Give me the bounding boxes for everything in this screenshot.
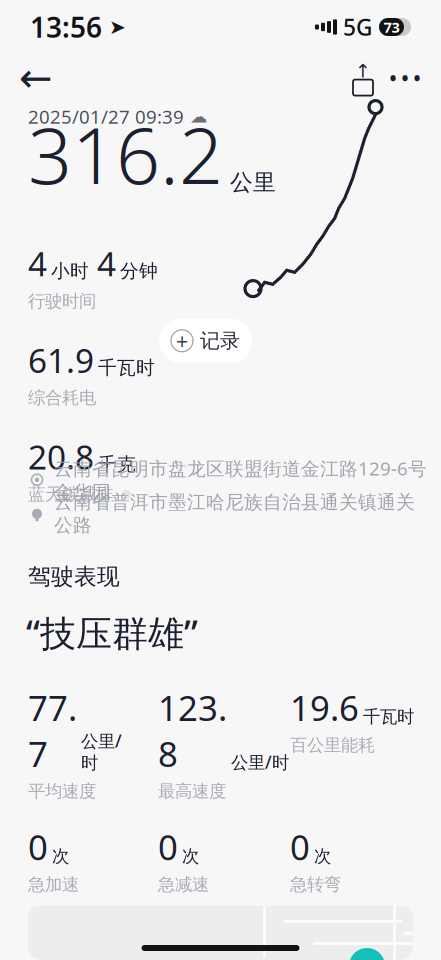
staticText: 次 — [52, 845, 69, 867]
button[interactable]: More — [383, 56, 427, 100]
staticText: 次 — [314, 845, 331, 867]
staticText: 4 — [97, 241, 116, 286]
staticText: 5G — [343, 12, 372, 42]
staticText: “技压群雄” — [26, 609, 198, 656]
staticText: 千瓦时 — [98, 356, 155, 379]
staticText: 记录 — [200, 328, 240, 353]
staticText: 云南省普洱市墨江哈尼族自治县通关镇通关公路 — [54, 491, 415, 537]
staticText: 千瓦时 — [363, 706, 414, 727]
staticText: 急减速 — [158, 874, 209, 895]
button[interactable]: Share — [343, 58, 383, 98]
staticText: 0 — [158, 824, 178, 870]
button[interactable]: + — [159, 319, 252, 363]
staticText: 19.6 — [290, 684, 359, 730]
staticText: 公里/时 — [81, 729, 122, 773]
staticText: 公里 — [230, 168, 276, 196]
staticText: 次 — [182, 845, 199, 867]
staticText: 驾驶表现 — [28, 563, 120, 591]
staticText: 最高速度 — [158, 780, 226, 802]
staticText: 百公里能耗 — [290, 734, 375, 756]
staticText: 316.2 — [28, 103, 223, 205]
staticText: 平均速度 — [28, 780, 96, 802]
staticText: 分钟 — [120, 260, 158, 282]
staticText: ↑ — [355, 60, 371, 82]
staticText: 综合耗电 — [28, 387, 96, 408]
staticText: 行驶时间 — [28, 291, 96, 312]
staticText: • • • — [389, 66, 420, 90]
staticText: 急加速 — [28, 874, 79, 895]
staticText: 0 — [28, 824, 48, 870]
staticText: 急转弯 — [290, 874, 341, 895]
staticText: 2025/01/27 09:39 — [28, 104, 184, 129]
staticText: 123.8 — [158, 684, 227, 776]
staticText: 13:56 — [30, 8, 102, 46]
button[interactable]: Back — [14, 56, 58, 100]
staticText: 小时 — [51, 260, 89, 282]
staticText: ➤ — [102, 16, 126, 38]
staticText: 公里/时 — [231, 750, 289, 773]
staticText: ☁ — [190, 107, 207, 126]
staticText: + — [176, 327, 188, 355]
staticText: 云南省昆明市盘龙区联盟街道金江路129-6号金华园 — [54, 456, 427, 504]
staticText: 蓝天碳减排 — [28, 484, 113, 505]
staticText: 61.9 — [28, 338, 94, 382]
staticText: 千克 — [98, 453, 136, 476]
staticText: 4 — [28, 241, 47, 286]
staticText: 77.7 — [28, 684, 77, 776]
staticText: 73 — [383, 17, 399, 37]
staticText: ← — [19, 55, 53, 101]
staticText: 20.8 — [28, 434, 94, 479]
staticText: 0 — [290, 824, 310, 870]
